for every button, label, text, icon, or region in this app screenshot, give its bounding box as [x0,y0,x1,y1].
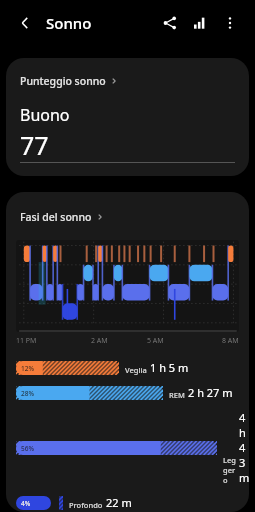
staticText: 22 m [106,495,132,510]
staticText: Profondo [69,500,103,510]
button[interactable]: Share [155,8,185,38]
button[interactable]: Punteggio sonno [6,58,249,176]
button[interactable]: Back [10,8,40,38]
staticText: 56% [21,444,34,453]
staticText: 2 h 27 m [188,385,233,400]
staticText: 2 AM [91,336,108,346]
staticText: Buono [20,104,70,126]
button[interactable]: More options [215,8,245,38]
staticText: Leggero [223,455,239,485]
staticText: Sonno [46,13,92,33]
staticText: REM [169,390,185,400]
staticText: 4% [21,499,31,508]
staticText: Punteggio sonno [20,74,106,88]
button[interactable]: 4% [6,495,249,510]
button[interactable]: Statistics [185,8,215,38]
staticText: 8 AM [222,336,239,346]
button[interactable]: 12% [6,360,249,375]
button[interactable]: Fasi del sonno [6,208,249,226]
staticText: 77 [20,128,49,162]
button[interactable]: 56% [6,410,249,485]
staticText: 11 PM [16,336,37,346]
staticText: 5 AM [147,336,164,346]
staticText: 28% [21,389,34,398]
staticText: Veglia [125,365,147,375]
staticText: 1 h 5 m [150,360,189,375]
staticText: Fasi del sonno [20,210,92,224]
button[interactable]: 28% [6,385,249,400]
staticText: 12% [21,364,34,373]
